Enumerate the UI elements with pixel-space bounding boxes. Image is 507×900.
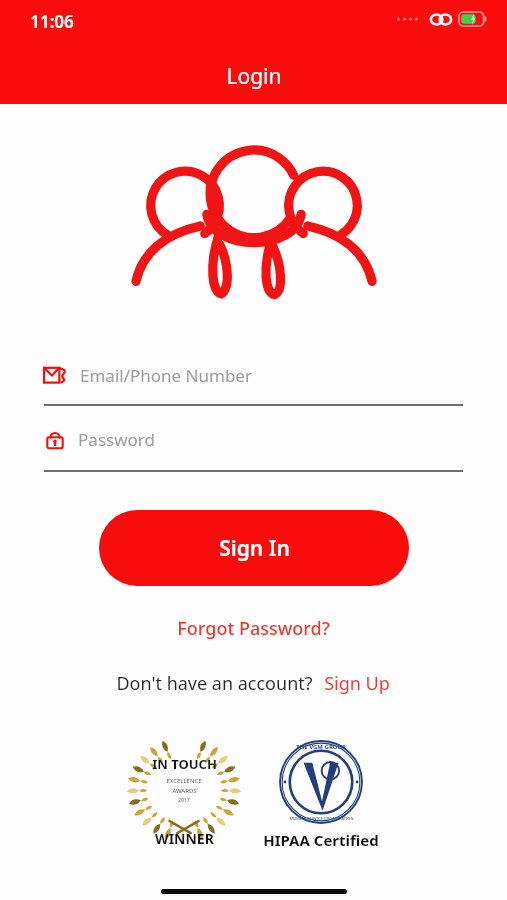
staticText: Password [78, 428, 155, 451]
button[interactable]: Forgot Password? [167, 612, 340, 645]
staticText: Login [226, 62, 282, 91]
staticText: Email/Phone Number [80, 364, 252, 387]
staticText: THE VGM GROUP [296, 743, 346, 751]
staticText: Sign Up [324, 671, 390, 696]
staticText: 11:06 [30, 10, 74, 33]
button[interactable]: Sign Up [322, 667, 392, 700]
staticText: EXCELLENCE [166, 777, 202, 785]
staticText: Sign In [219, 534, 290, 563]
button[interactable]: Password [44, 424, 463, 454]
button[interactable]: Email/Phone Number [44, 360, 463, 390]
staticText: Forgot Password? [177, 616, 330, 641]
staticText: MEMBER SERVICE ORGANIZATION [289, 816, 354, 821]
button[interactable]: Sign In [99, 510, 409, 586]
staticText: Don't have an account? [116, 671, 313, 696]
staticText: WINNER [155, 829, 214, 848]
staticText: 2017 [178, 797, 190, 804]
staticText: HIPAA Certified [263, 830, 379, 850]
staticText: IN TOUCH [152, 755, 217, 773]
staticText: AWARDS [172, 787, 197, 795]
